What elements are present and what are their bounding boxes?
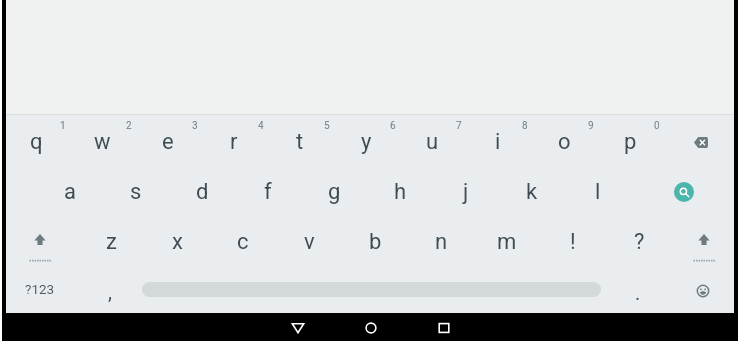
button[interactable]: h <box>367 167 433 217</box>
staticText: h <box>394 179 407 205</box>
button[interactable]: j <box>433 167 499 217</box>
button[interactable]: ! <box>540 217 606 267</box>
staticText: n <box>435 229 448 255</box>
staticText: v <box>304 229 315 255</box>
staticText: q <box>30 129 43 155</box>
staticText: y <box>361 129 372 155</box>
button[interactable]: z <box>78 217 144 267</box>
button[interactable]: , <box>77 266 143 316</box>
button[interactable]: i <box>465 117 531 167</box>
staticText: 5 <box>324 120 330 132</box>
button[interactable]: c <box>210 217 276 267</box>
button[interactable]: n <box>408 217 474 267</box>
button[interactable]: . <box>605 267 671 317</box>
button[interactable]: x <box>144 217 210 267</box>
staticText: . <box>635 281 641 304</box>
button[interactable] <box>347 314 395 342</box>
button[interactable]: p <box>597 117 663 167</box>
button[interactable] <box>668 117 734 167</box>
staticText: d <box>196 179 209 205</box>
staticText: ?123 <box>25 281 55 297</box>
staticText: ! <box>570 229 576 255</box>
button[interactable] <box>7 217 73 267</box>
button[interactable] <box>274 314 322 342</box>
button[interactable]: b <box>342 217 408 267</box>
button[interactable]: y <box>333 117 399 167</box>
staticText: 7 <box>456 120 462 132</box>
button[interactable]: w <box>69 117 135 167</box>
button[interactable]: e <box>135 117 201 167</box>
staticText: r <box>230 129 238 155</box>
button[interactable]: t <box>267 117 333 167</box>
button[interactable]: ? <box>606 217 672 267</box>
staticText: 0 <box>654 120 660 132</box>
button[interactable]: k <box>499 167 565 217</box>
button[interactable]: g <box>301 167 367 217</box>
staticText: k <box>526 179 538 205</box>
staticText: b <box>369 229 382 255</box>
button[interactable] <box>651 167 717 217</box>
staticText: 1 <box>60 120 66 132</box>
staticText: w <box>94 129 111 155</box>
staticText: f <box>264 179 272 205</box>
staticText: p <box>624 129 637 155</box>
staticText: x <box>172 229 183 255</box>
button[interactable]: v <box>276 217 342 267</box>
staticText: o <box>558 129 571 155</box>
button[interactable]: ?123 <box>7 264 73 314</box>
staticText: 8 <box>522 120 528 132</box>
staticText: 6 <box>390 120 396 132</box>
button[interactable] <box>670 266 736 316</box>
staticText: 4 <box>258 120 264 132</box>
button[interactable]: q <box>3 117 69 167</box>
button[interactable] <box>671 217 737 267</box>
staticText: 3 <box>192 120 198 132</box>
button[interactable]: s <box>103 167 169 217</box>
button[interactable]: o <box>531 117 597 167</box>
staticText: z <box>106 229 117 255</box>
staticText: 2 <box>126 120 132 132</box>
staticText: a <box>64 179 76 205</box>
staticText: , <box>108 280 112 303</box>
staticText: g <box>328 179 341 205</box>
button[interactable]: r <box>201 117 267 167</box>
staticText: l <box>595 179 601 205</box>
staticText: u <box>426 129 439 155</box>
staticText: j <box>463 179 469 205</box>
button[interactable]: d <box>169 167 235 217</box>
button[interactable]: f <box>235 167 301 217</box>
button[interactable]: a <box>37 167 103 217</box>
staticText: s <box>130 179 142 205</box>
button[interactable]: u <box>399 117 465 167</box>
staticText: t <box>296 129 304 155</box>
staticText: m <box>497 229 517 255</box>
button[interactable]: m <box>474 217 540 267</box>
button[interactable]: l <box>565 167 631 217</box>
staticText: ? <box>634 229 645 255</box>
staticText: i <box>495 129 501 155</box>
staticText: e <box>162 129 174 155</box>
staticText: c <box>237 229 249 255</box>
staticText: 9 <box>588 120 594 132</box>
button[interactable] <box>420 314 468 342</box>
